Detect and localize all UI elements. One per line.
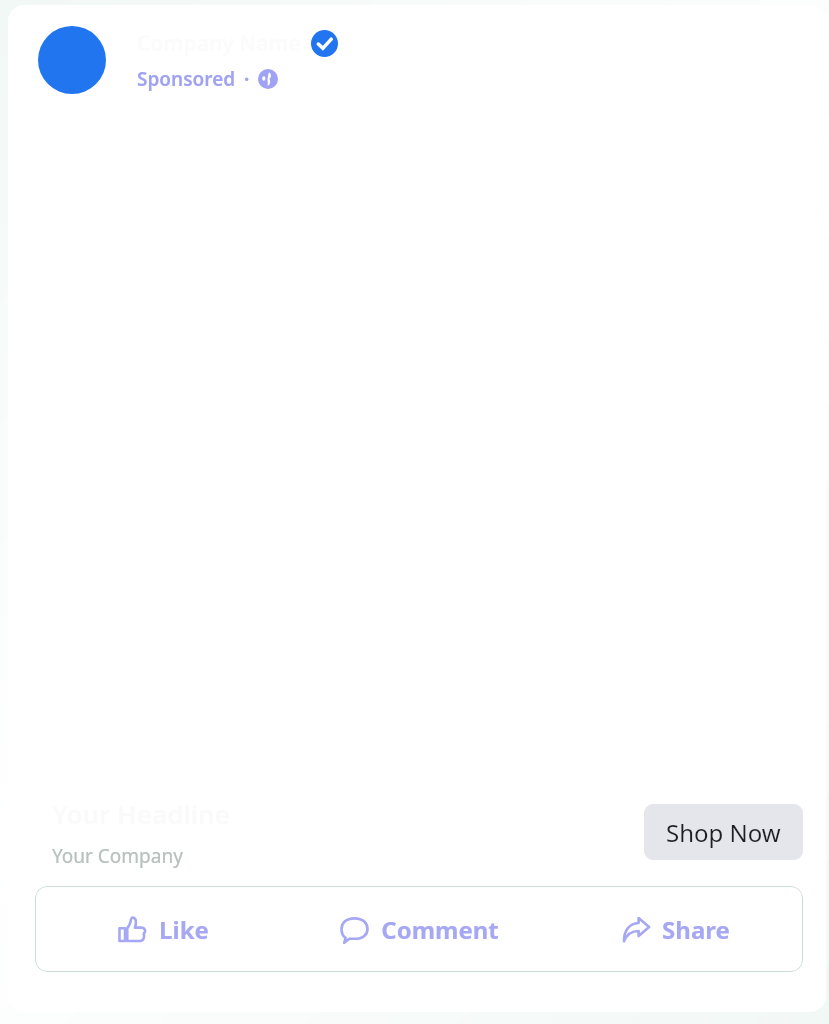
button[interactable]: Share	[547, 886, 803, 972]
button[interactable]: Like	[35, 886, 291, 972]
other: Public	[258, 69, 278, 89]
staticText: Shop Now	[666, 816, 781, 849]
staticText: Share	[662, 913, 730, 946]
staticText: Sponsored	[137, 66, 236, 92]
staticText: Comment	[381, 913, 499, 946]
button[interactable]: Shop Now	[644, 804, 803, 860]
button[interactable]: Profile picture	[38, 26, 106, 94]
other: Verified	[311, 30, 338, 57]
staticText: Like	[159, 913, 209, 946]
button[interactable]: Comment	[291, 886, 547, 972]
staticText: ·	[244, 66, 250, 92]
staticText: Your Company	[52, 843, 183, 869]
